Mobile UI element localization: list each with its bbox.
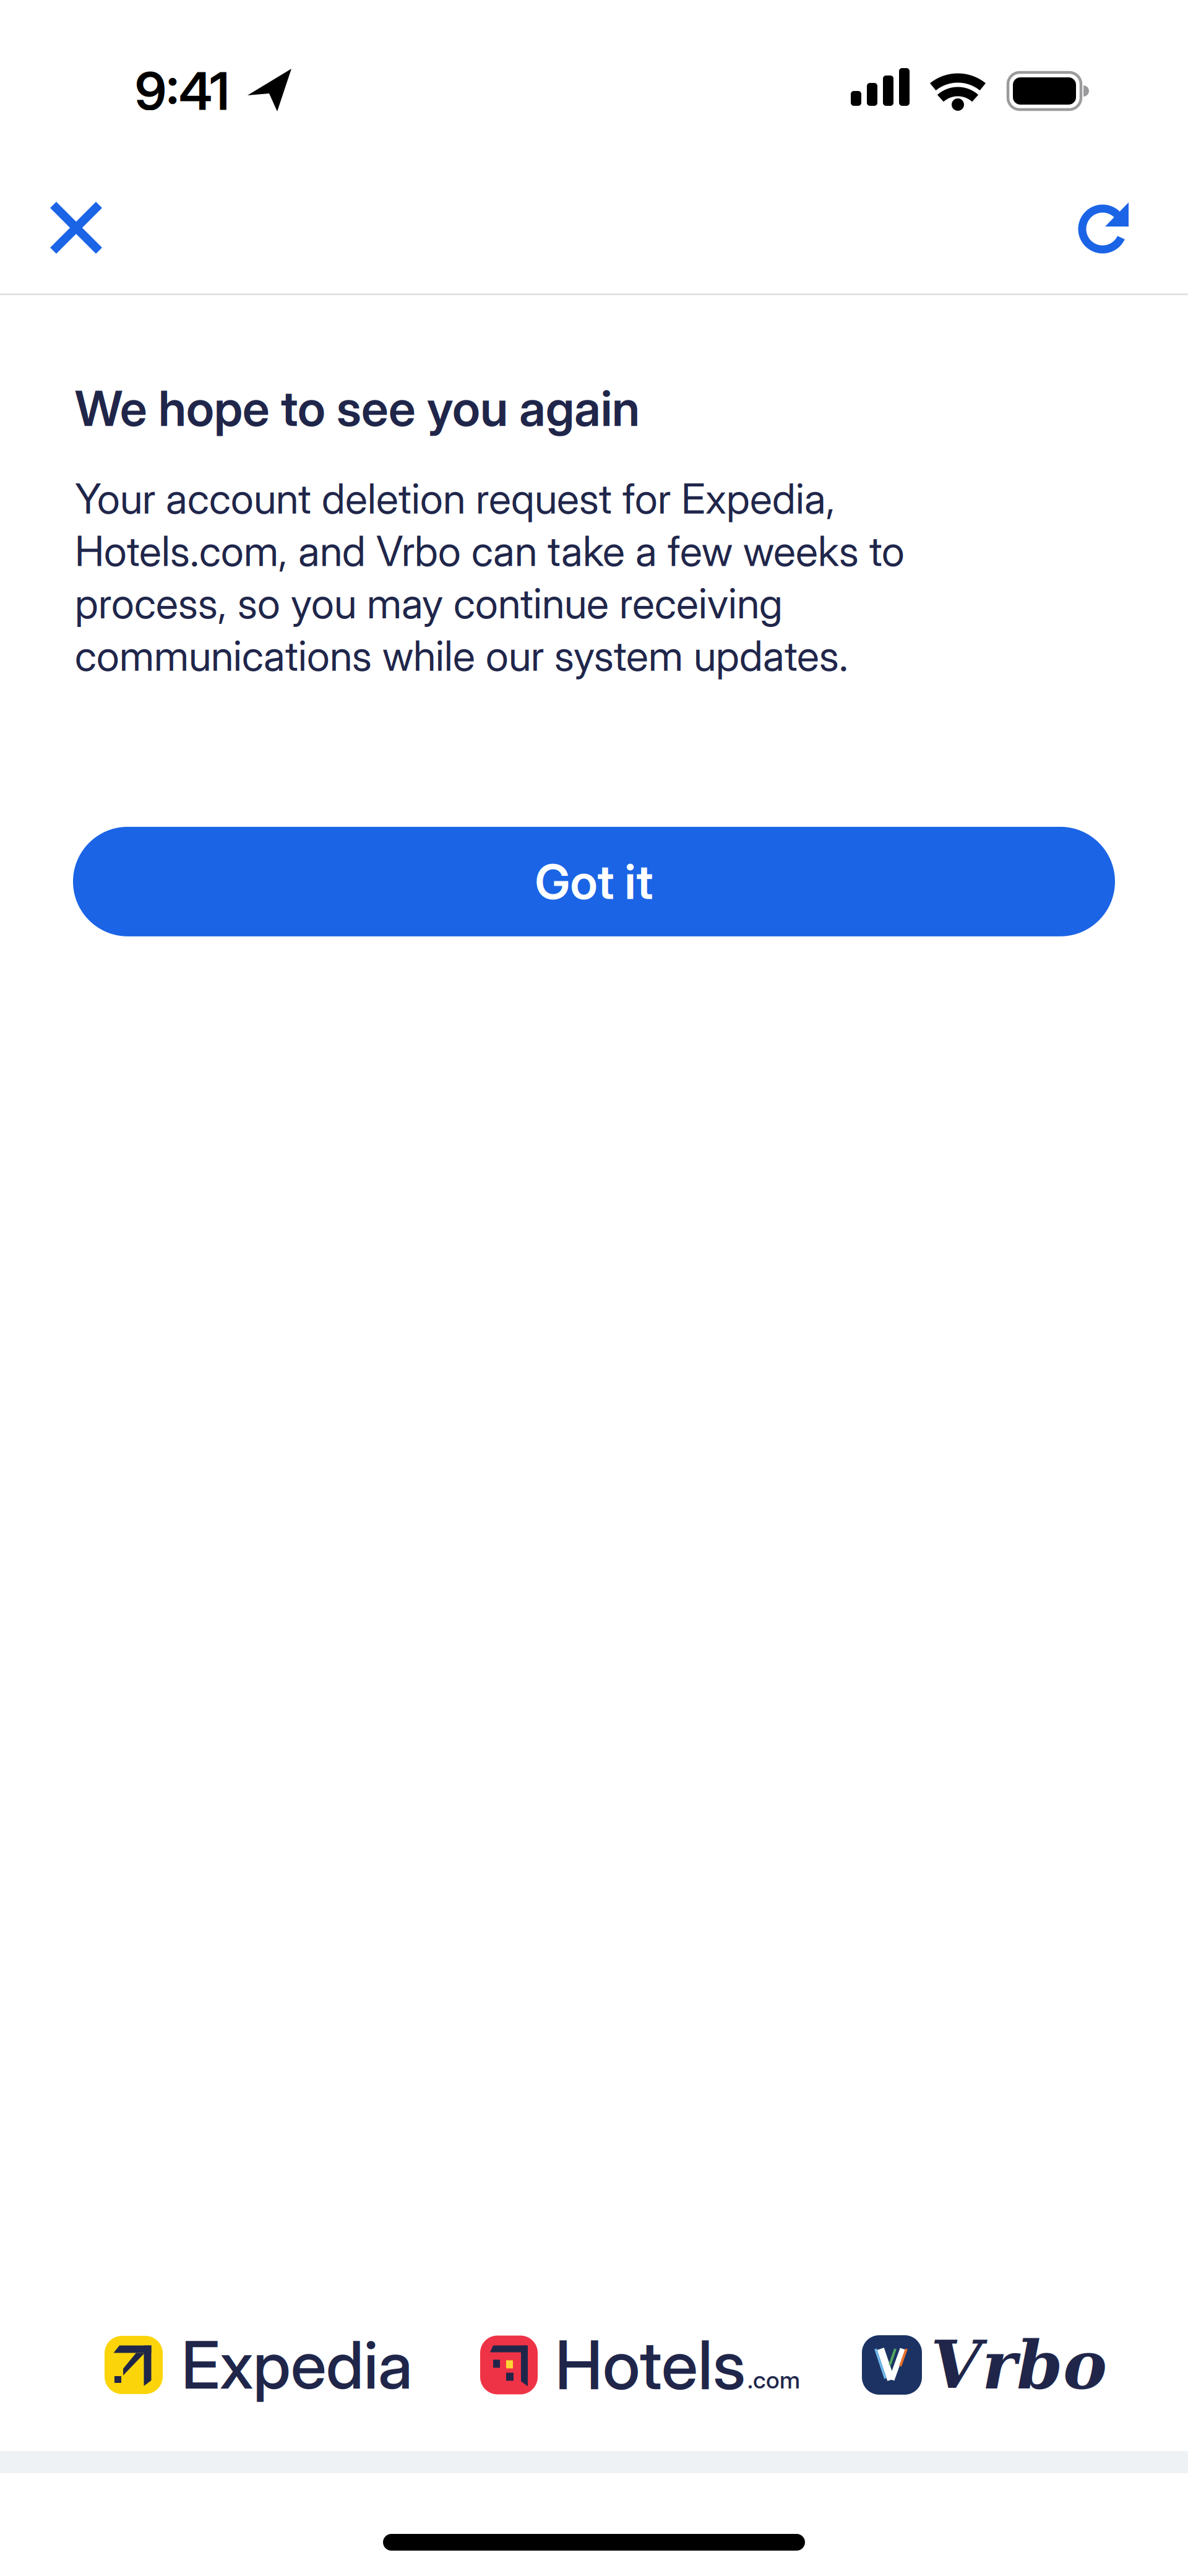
staticText: We hope to see you again <box>75 379 640 438</box>
staticText: Your account deletion request for Expedi… <box>75 474 905 681</box>
staticText: .com <box>747 2365 800 2394</box>
button[interactable]: Close <box>0 181 152 293</box>
staticText: Got it <box>535 853 653 911</box>
button[interactable]: Got it <box>73 827 1115 936</box>
staticText: Expedia <box>181 2326 413 2404</box>
staticText: Hotels <box>555 2325 746 2405</box>
staticText: Vrbo <box>931 2326 1107 2404</box>
staticText: 9:41 <box>135 59 230 122</box>
button[interactable]: Reload <box>1035 181 1171 293</box>
